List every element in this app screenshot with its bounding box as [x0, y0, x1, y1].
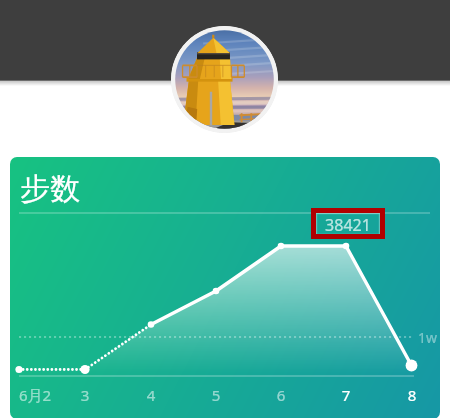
- button[interactable]: Profile photo: [171, 26, 278, 133]
- staticText: 4: [131, 385, 171, 405]
- button[interactable]: 38421: [316, 213, 380, 235]
- staticText: 7: [326, 385, 366, 405]
- staticText: 6月2: [19, 385, 59, 405]
- staticText: 3: [65, 385, 105, 405]
- staticText: 8: [392, 385, 432, 405]
- staticText: 6: [261, 385, 301, 405]
- staticText: 步数: [20, 170, 80, 208]
- staticText: 5: [196, 385, 236, 405]
- button[interactable]: 步数: [10, 157, 440, 418]
- staticText: 1w: [418, 328, 438, 347]
- staticText: 38421: [316, 214, 380, 236]
